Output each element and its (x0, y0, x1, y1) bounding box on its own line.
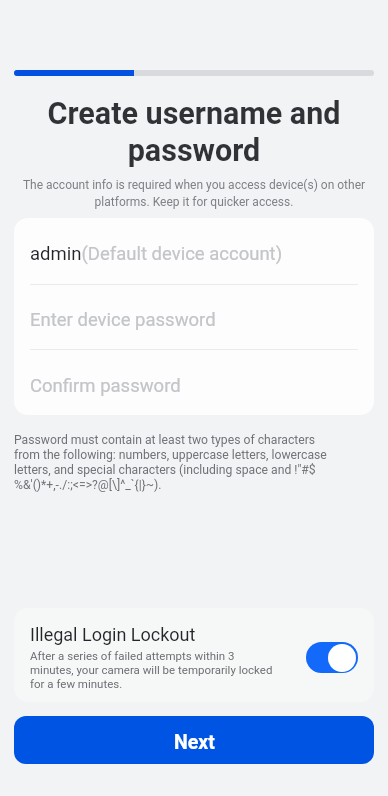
staticText: Next (174, 731, 215, 754)
staticText: After a series of failed attempts within… (30, 649, 277, 691)
button[interactable]: Confirm password (14, 350, 374, 415)
button[interactable]: Illegal Login Lockout toggle (306, 642, 358, 673)
button[interactable]: admin(Default device account) (14, 218, 374, 284)
staticText: Confirm password (30, 375, 181, 397)
staticText: Illegal Login Lockout (30, 624, 196, 645)
staticText: Enter device password (30, 309, 216, 331)
button[interactable]: Enter device password (14, 285, 374, 349)
staticText: The account info is required when you ac… (16, 178, 372, 209)
staticText: admin(Default device account) (30, 243, 283, 265)
staticText: Create username and password (22, 96, 366, 168)
button[interactable]: Illegal Login Lockout (14, 608, 374, 702)
staticText: Password must contain at least two types… (14, 433, 328, 492)
button[interactable]: Next (14, 716, 374, 764)
